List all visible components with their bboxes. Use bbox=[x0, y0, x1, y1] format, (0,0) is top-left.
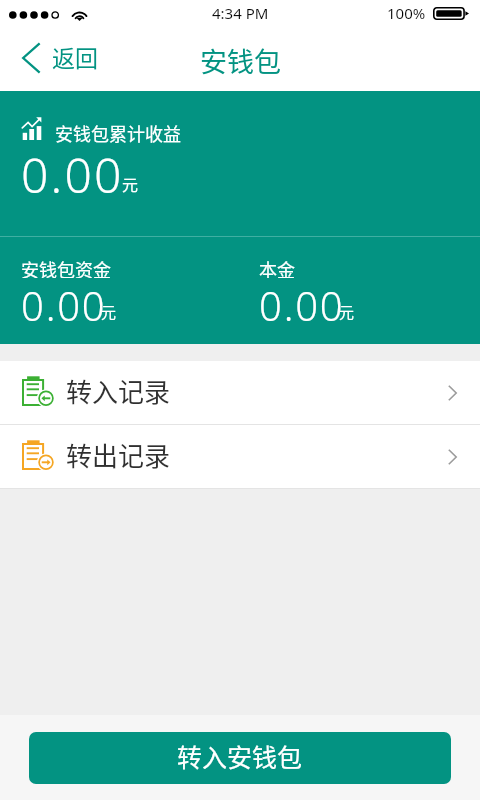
staticText: 0.00 bbox=[21, 142, 124, 207]
staticText: 转出记录 bbox=[66, 436, 171, 474]
staticText: 转入记录 bbox=[66, 372, 171, 410]
staticText: 元 bbox=[101, 301, 117, 323]
staticText: 安钱包资金 bbox=[21, 256, 111, 278]
staticText: 本金 bbox=[259, 256, 295, 278]
staticText: 0.00 bbox=[21, 278, 107, 332]
staticText: 4:34 PM bbox=[212, 3, 269, 23]
button[interactable]: 转入记录 bbox=[0, 361, 480, 424]
staticText: 100% bbox=[387, 3, 426, 23]
staticText: 元 bbox=[122, 172, 139, 195]
staticText: 安钱包累计收益 bbox=[55, 120, 181, 146]
button[interactable]: 返回 bbox=[0, 38, 112, 86]
button[interactable]: 转出记录 bbox=[0, 425, 480, 488]
staticText: 安钱包 bbox=[200, 41, 281, 80]
staticText: 转入安钱包 bbox=[177, 738, 303, 774]
button[interactable]: 转入安钱包 bbox=[29, 732, 451, 784]
staticText: 0.00 bbox=[259, 278, 345, 332]
staticText: 返回 bbox=[52, 40, 98, 73]
staticText: 元 bbox=[339, 301, 355, 323]
